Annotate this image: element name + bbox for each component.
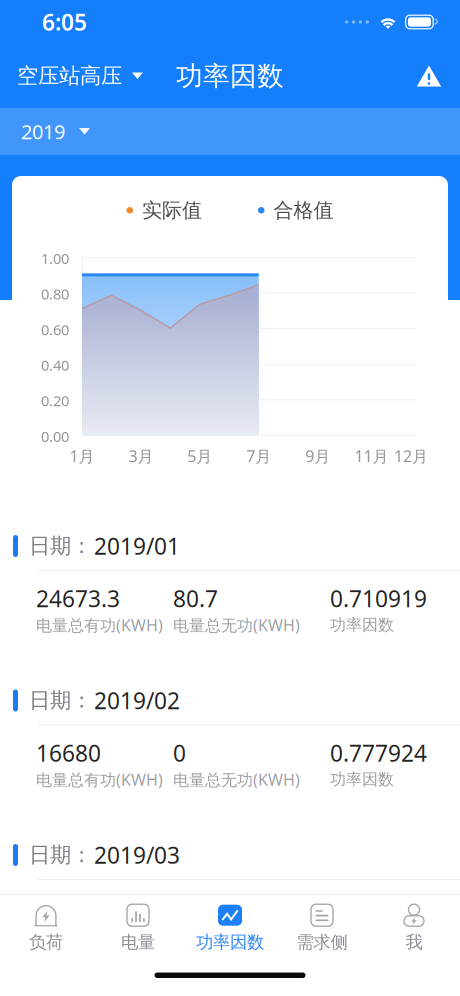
staticText: 0 <box>173 892 186 922</box>
staticText: 0.60 <box>41 320 69 339</box>
staticText: 16680 <box>36 738 101 768</box>
staticText: 电量总无功(KWH) <box>173 769 300 790</box>
button[interactable]: 日期： <box>0 676 460 831</box>
staticText: 2019 <box>21 118 65 145</box>
staticText: 2019/02 <box>94 685 180 715</box>
button[interactable]: 电量 <box>92 895 184 958</box>
button[interactable]: 功率因数 <box>184 895 276 958</box>
staticText: 电量总有功(KWH) <box>36 923 163 945</box>
button[interactable]: 我 <box>368 895 460 958</box>
button[interactable]: 空压站高压 <box>0 44 157 108</box>
button[interactable]: 日期： <box>0 522 460 676</box>
staticText: 7月 <box>246 445 271 467</box>
staticText: 合格值 <box>273 198 333 223</box>
staticText: 24673.3 <box>36 583 120 613</box>
staticText: 空压站高压 <box>17 63 122 89</box>
staticText: 电量总无功(KWH) <box>173 923 300 945</box>
staticText: 电量总有功(KWH) <box>36 614 163 636</box>
staticText: 19003.2 <box>36 892 120 922</box>
staticText: 0.710919 <box>330 583 427 613</box>
button[interactable]: Alerts <box>400 44 460 108</box>
staticText: 电量总无功(KWH) <box>173 614 300 636</box>
button[interactable]: 负荷 <box>0 895 92 958</box>
staticText: 电量 <box>121 932 155 953</box>
staticText: 功率因数 <box>330 770 394 789</box>
staticText: 2019/01 <box>94 531 180 561</box>
staticText: 6:05 <box>42 7 87 37</box>
staticText: 功率因数 <box>330 615 394 635</box>
staticText: 0.00 <box>41 426 69 446</box>
staticText: 0 <box>173 738 186 768</box>
staticText: 9月 <box>305 445 330 467</box>
staticText: 0.20 <box>41 391 69 410</box>
staticText: 1月 <box>69 445 94 467</box>
staticText: 日期： <box>29 687 92 714</box>
button[interactable]: 日期： <box>0 831 460 985</box>
staticText: 日期： <box>29 533 92 559</box>
staticText: 0.777924 <box>330 738 427 768</box>
staticText: 功率因数 <box>176 60 284 92</box>
staticText: 负荷 <box>29 932 63 953</box>
staticText: 80.7 <box>173 583 218 613</box>
staticText: 11月 <box>354 445 388 467</box>
staticText: 0.80 <box>41 284 69 304</box>
staticText: 需求侧 <box>296 932 347 953</box>
staticText: 功率因数 <box>330 924 394 944</box>
staticText: 功率因数 <box>196 932 264 953</box>
staticText: 我 <box>405 932 422 953</box>
staticText: 5月 <box>187 445 212 467</box>
staticText: 3月 <box>128 445 153 467</box>
staticText: 日期： <box>29 842 92 868</box>
staticText: 0.801133 <box>330 892 427 922</box>
staticText: 0.40 <box>41 355 69 375</box>
staticText: 实际值 <box>142 198 202 223</box>
button[interactable]: 2019 <box>0 108 110 155</box>
staticText: 1.00 <box>41 248 69 268</box>
staticText: 2019/03 <box>94 840 180 870</box>
button[interactable]: 需求侧 <box>276 895 368 958</box>
staticText: 电量总有功(KWH) <box>36 769 163 790</box>
staticText: 12月 <box>394 445 428 467</box>
